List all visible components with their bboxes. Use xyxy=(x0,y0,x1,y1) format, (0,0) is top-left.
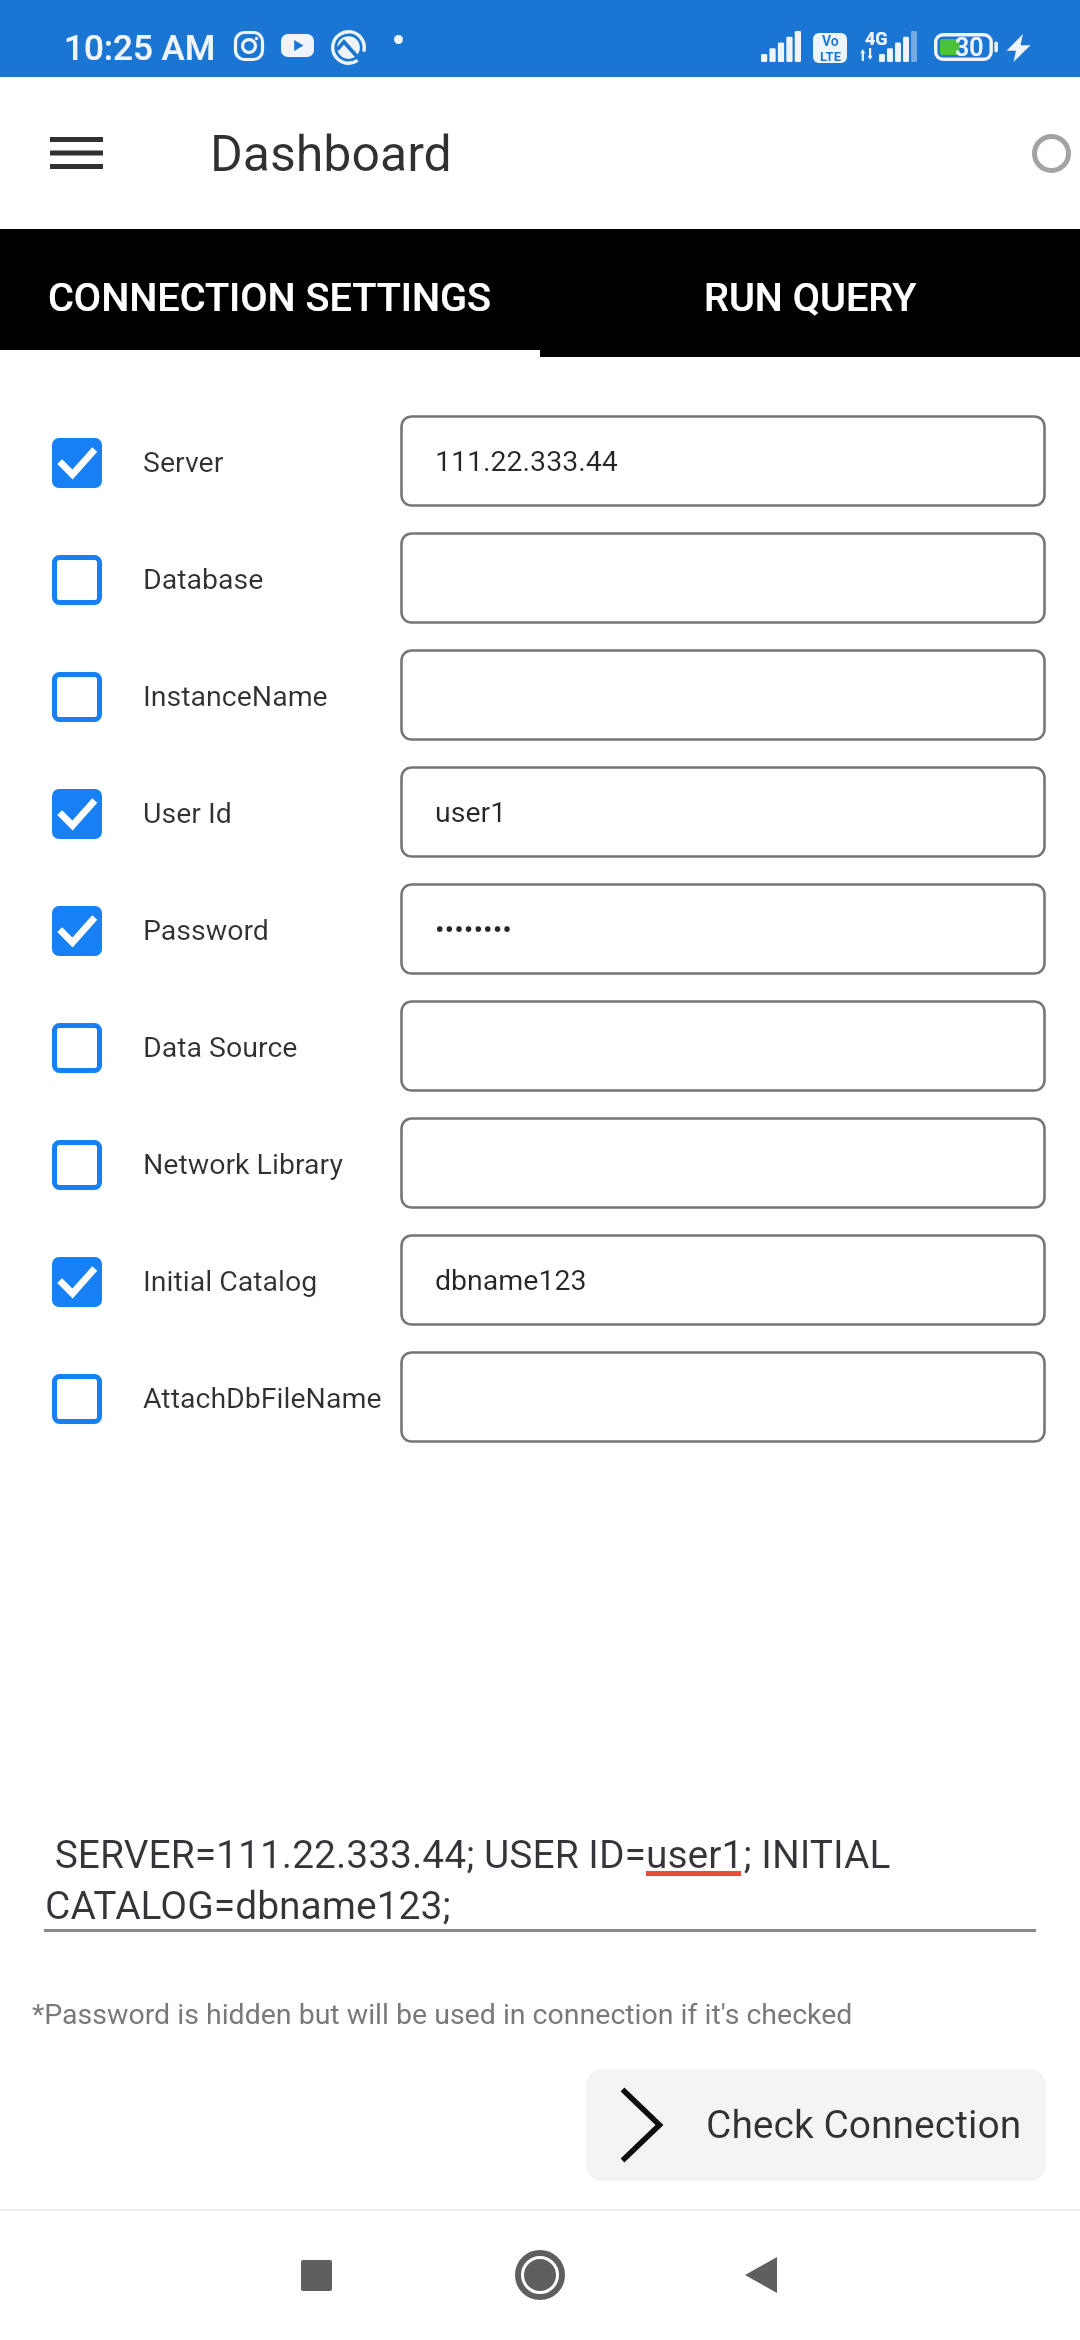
staticText: 10:25 AM xyxy=(64,28,216,69)
button[interactable]: AttachDbFileName xyxy=(0,1340,390,1457)
staticText: Initial Catalog xyxy=(143,1265,318,1298)
staticText: SERVER=111.22.333.44; USER ID=user1; INI… xyxy=(45,1832,1040,1929)
staticText: •••••••• xyxy=(435,913,512,946)
staticText: Network Library xyxy=(143,1148,343,1181)
staticText: Dashboard xyxy=(210,125,452,184)
staticText: CONNECTION SETTINGS xyxy=(48,274,492,320)
button[interactable]: Data Source value xyxy=(400,1000,1046,1092)
button[interactable]: Server value xyxy=(400,415,1046,507)
button[interactable]: SERVER=111.22.333.44; USER ID=user1; INI… xyxy=(44,1826,1039,1932)
button[interactable]: Network Library xyxy=(0,1106,390,1223)
staticText: 111.22.333.44 xyxy=(435,445,618,478)
button[interactable]: Recent apps xyxy=(261,2220,371,2330)
staticText: Check Connection xyxy=(706,2102,1022,2148)
staticText: user1 xyxy=(435,796,507,829)
button[interactable]: Password value xyxy=(400,883,1046,975)
button[interactable]: User Id xyxy=(0,755,390,872)
staticText: Password xyxy=(143,914,269,947)
staticText: RUN QUERY xyxy=(704,274,917,320)
staticText: *Password is hidden but will be used in … xyxy=(32,1998,853,2031)
staticText: 4G xyxy=(865,28,888,49)
button[interactable]: RUN QUERY xyxy=(540,229,1080,357)
staticText: Data Source xyxy=(143,1031,298,1064)
button[interactable]: Open navigation menu xyxy=(24,101,128,205)
button[interactable]: User Id value xyxy=(400,766,1046,858)
staticText: InstanceName xyxy=(143,680,328,713)
button[interactable]: Initial Catalog value xyxy=(400,1234,1046,1326)
button[interactable]: Server xyxy=(0,404,390,521)
button[interactable]: InstanceName value xyxy=(400,649,1046,741)
staticText: Vo xyxy=(822,33,839,49)
button[interactable]: Network Library value xyxy=(400,1117,1046,1209)
button[interactable]: Database value xyxy=(400,532,1046,624)
staticText: AttachDbFileName xyxy=(143,1382,382,1415)
staticText: Database xyxy=(143,563,264,596)
button[interactable]: Check Connection xyxy=(586,2069,1046,2181)
button[interactable]: CONNECTION SETTINGS xyxy=(0,229,540,357)
button[interactable]: InstanceName xyxy=(0,638,390,755)
staticText: User Id xyxy=(143,797,232,830)
button[interactable]: Account xyxy=(1006,108,1080,198)
button[interactable]: Initial Catalog xyxy=(0,1223,390,1340)
button[interactable]: Home xyxy=(485,2220,595,2330)
button[interactable]: Database xyxy=(0,521,390,638)
button[interactable]: Password xyxy=(0,872,390,989)
staticText: Server xyxy=(143,446,224,479)
staticText: LTE xyxy=(820,49,841,63)
button[interactable]: Data Source xyxy=(0,989,390,1106)
staticText: 30 xyxy=(955,33,984,61)
staticText: dbname123 xyxy=(435,1264,587,1297)
button[interactable]: AttachDbFileName value xyxy=(400,1351,1046,1443)
button[interactable]: Back xyxy=(706,2220,816,2330)
